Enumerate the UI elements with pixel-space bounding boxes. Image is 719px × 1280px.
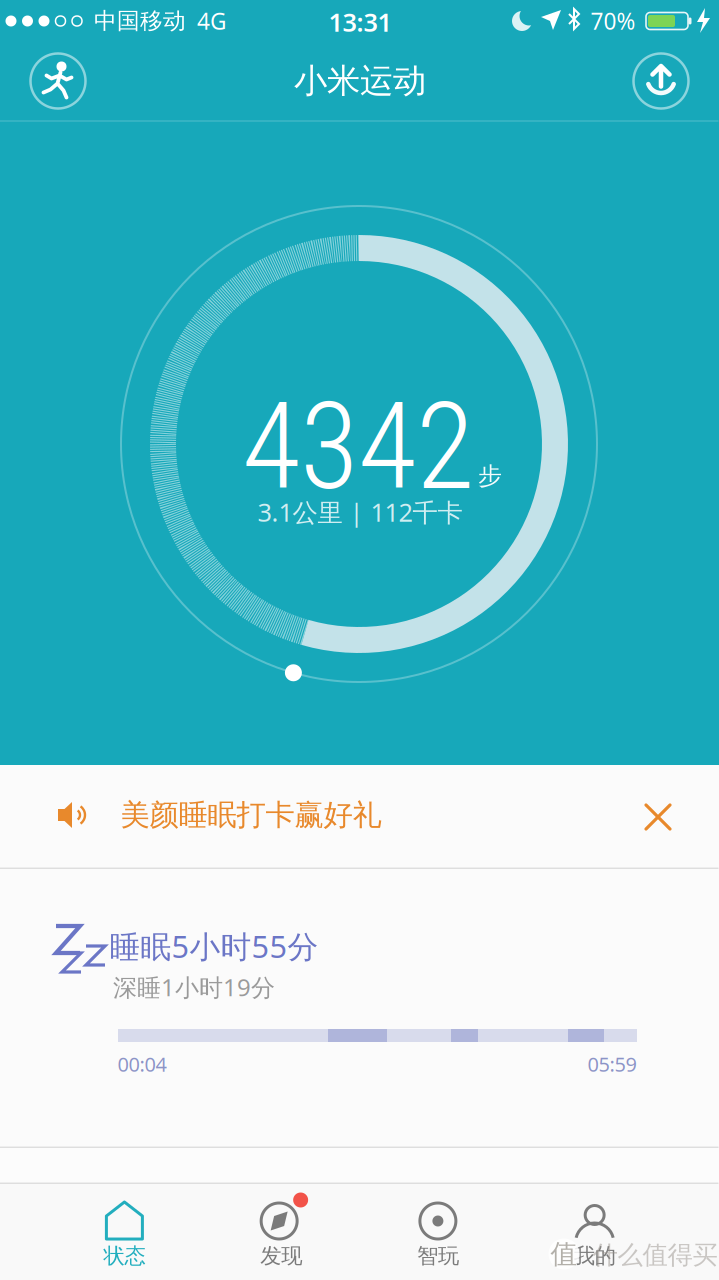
staticText: 4342 — [242, 377, 474, 517]
staticText: 小米运动 — [294, 60, 426, 101]
staticText: 值 — [550, 1238, 577, 1270]
button[interactable]: 我的 — [516, 1184, 673, 1280]
staticText: 70% — [590, 6, 635, 36]
staticText: 3.1公里 | 112千卡 — [257, 495, 462, 529]
staticText: 13:31 — [328, 5, 391, 39]
staticText: 00:04 — [117, 1051, 166, 1077]
staticText: 步 — [478, 461, 502, 491]
staticText: 状态 — [103, 1243, 145, 1269]
staticText: 睡眠5小时55分 — [109, 926, 318, 966]
button[interactable]: 智玩 — [359, 1184, 516, 1280]
button[interactable] — [633, 53, 688, 108]
staticText: 4G — [197, 6, 227, 36]
button[interactable]: 美颜睡眠打卡赢好礼 — [0, 765, 719, 869]
staticText: 什么值得买 — [592, 1239, 717, 1270]
button[interactable]: 发现 — [203, 1184, 360, 1280]
staticText: 美颜睡眠打卡赢好礼 — [120, 797, 381, 833]
button[interactable] — [30, 53, 85, 108]
button[interactable]: 状态 — [46, 1184, 203, 1280]
staticText: 发现 — [260, 1243, 302, 1269]
staticText: 深睡1小时19分 — [113, 971, 275, 1003]
staticText: 中国移动 — [94, 7, 186, 35]
staticText: 我的 — [574, 1243, 616, 1269]
button[interactable]: 睡眠5小时55分 — [0, 869, 719, 1148]
button[interactable] — [634, 793, 682, 841]
staticText: 智玩 — [417, 1243, 459, 1269]
staticText: 05:59 — [587, 1051, 636, 1077]
